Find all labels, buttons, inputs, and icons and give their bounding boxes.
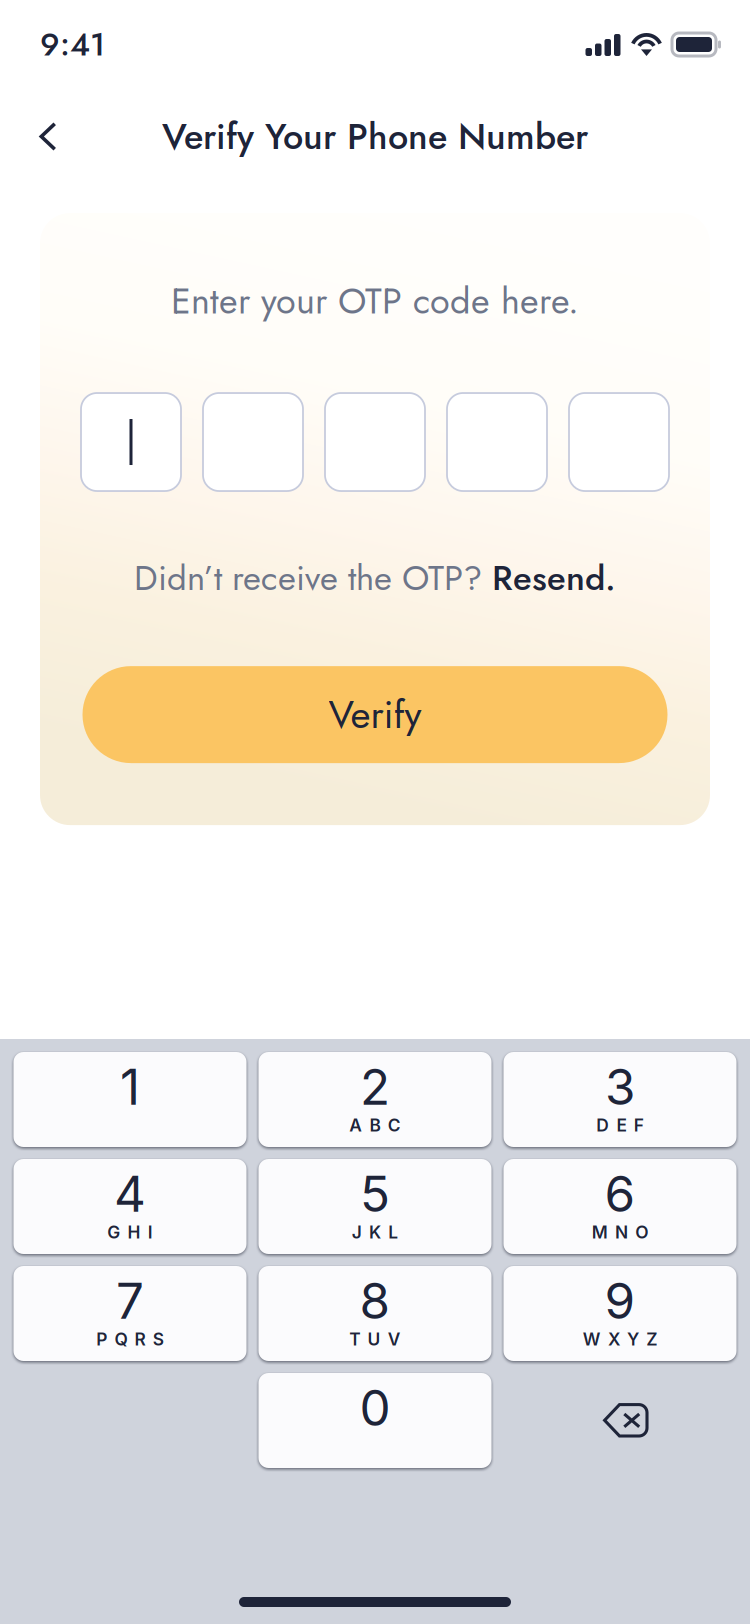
staticText: D E F xyxy=(596,1115,644,1136)
staticText: 9:41 xyxy=(40,21,105,68)
staticText: W X Y Z xyxy=(583,1329,657,1350)
staticText: 7 xyxy=(116,1271,144,1331)
staticText: M N O xyxy=(592,1222,648,1243)
staticText: Enter your OTP code here. xyxy=(171,275,579,327)
button[interactable]: 5 xyxy=(258,1159,491,1254)
button[interactable]: 9 xyxy=(503,1266,736,1361)
staticText: Resend. xyxy=(492,553,616,603)
button[interactable]: Back xyxy=(20,108,76,164)
staticText: 2 xyxy=(360,1057,390,1117)
staticText: 4 xyxy=(114,1164,146,1224)
staticText: Verify xyxy=(328,687,421,743)
staticText: P Q R S xyxy=(96,1329,164,1350)
staticText: G H I xyxy=(107,1222,153,1243)
button[interactable]: 7 xyxy=(13,1266,246,1361)
staticText: Didn’t receive the OTP? xyxy=(134,553,492,603)
staticText: 5 xyxy=(360,1164,390,1224)
staticText: 3 xyxy=(605,1057,635,1117)
button[interactable]: 2 xyxy=(258,1052,491,1147)
staticText: 1 xyxy=(120,1057,140,1117)
staticText: 6 xyxy=(604,1164,635,1224)
button[interactable]: 0 xyxy=(258,1373,491,1468)
button[interactable]: 8 xyxy=(258,1266,491,1361)
button[interactable]: 4 xyxy=(13,1159,246,1254)
staticText: A B C xyxy=(349,1115,401,1136)
button[interactable]: 1 xyxy=(13,1052,246,1147)
staticText: 8 xyxy=(359,1271,390,1331)
button[interactable]: Resend. xyxy=(492,553,616,603)
button[interactable]: Delete xyxy=(503,1373,736,1468)
staticText: 9 xyxy=(604,1271,635,1331)
staticText: Verify Your Phone Number xyxy=(162,110,588,162)
button[interactable]: Verify xyxy=(82,666,667,763)
staticText: T U V xyxy=(349,1329,401,1350)
button[interactable]: 3 xyxy=(503,1052,736,1147)
staticText: 0 xyxy=(359,1378,390,1438)
button[interactable]: 6 xyxy=(503,1159,736,1254)
staticText: J K L xyxy=(352,1222,398,1243)
